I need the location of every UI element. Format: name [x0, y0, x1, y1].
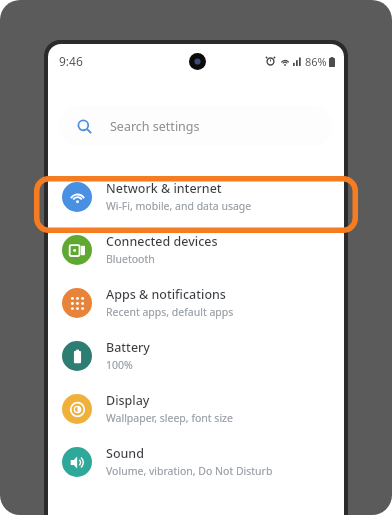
staticText: Display: [106, 392, 150, 409]
button[interactable]: Sound: [48, 435, 344, 488]
staticText: Apps & notifications: [106, 286, 226, 303]
button[interactable]: Apps & notifications: [48, 276, 344, 329]
button[interactable]: Network & internet: [48, 170, 344, 223]
staticText: Search settings: [110, 118, 200, 135]
staticText: Connected devices: [106, 233, 218, 250]
staticText: Volume, vibration, Do Not Disturb: [106, 464, 273, 478]
staticText: Sound: [106, 445, 144, 462]
staticText: Wi-Fi, mobile, and data usage: [106, 199, 252, 213]
button[interactable]: Battery: [48, 329, 344, 382]
button[interactable]: Display: [48, 382, 344, 435]
staticText: Recent apps, default apps: [106, 305, 234, 319]
staticText: 100%: [106, 358, 133, 372]
staticText: 86%: [305, 54, 327, 69]
button[interactable]: Search settings: [59, 106, 333, 146]
staticText: Wallpaper, sleep, font size: [106, 411, 233, 425]
staticText: Battery: [106, 339, 150, 356]
staticText: Network & internet: [106, 180, 222, 197]
staticText: 9:46: [59, 53, 83, 69]
button[interactable]: Connected devices: [48, 223, 344, 276]
staticText: Bluetooth: [106, 252, 155, 266]
